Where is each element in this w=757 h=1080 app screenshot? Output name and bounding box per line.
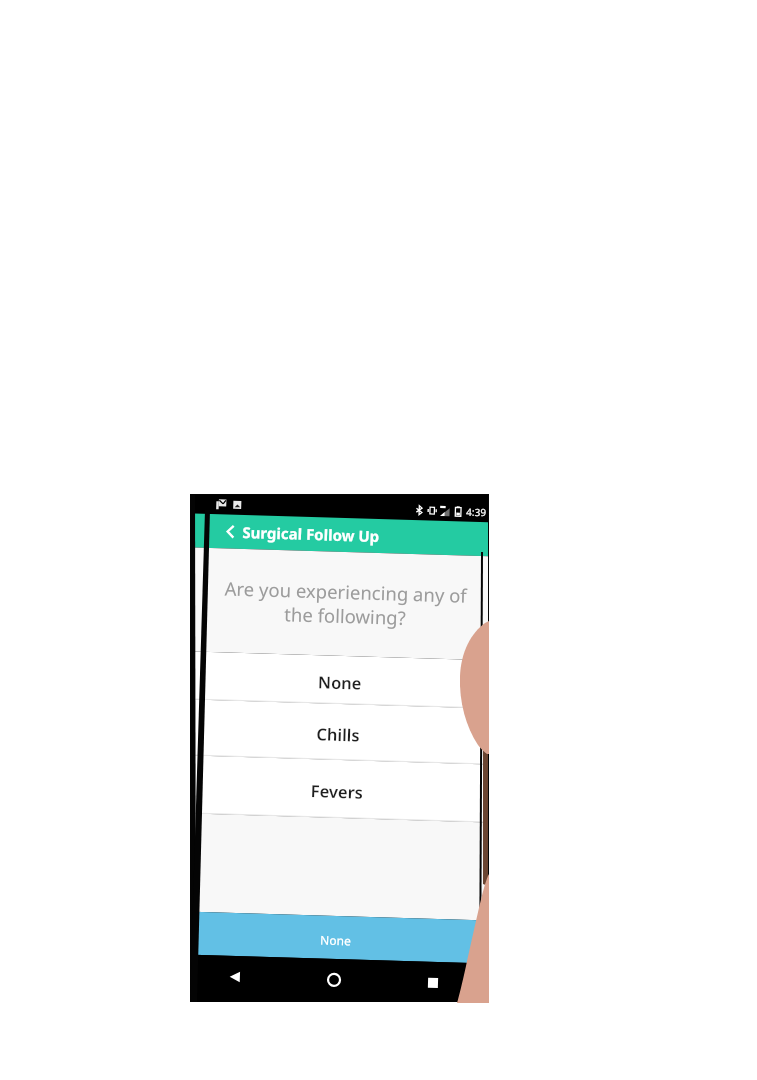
button[interactable]: None (194, 651, 488, 709)
button[interactable]: Back (220, 521, 241, 542)
button[interactable]: Recents (420, 969, 446, 996)
staticText: Are you experiencing any of the followin… (194, 574, 488, 633)
staticText: Chills (316, 722, 361, 746)
staticText: None (320, 931, 351, 948)
staticText: Surgical Follow Up (242, 522, 380, 546)
staticText: Fevers (310, 779, 364, 803)
button[interactable]: Home (321, 966, 347, 993)
button[interactable]: Fevers (194, 755, 488, 823)
button[interactable]: Chills (194, 699, 488, 765)
staticText: 4:39 (466, 505, 486, 519)
button[interactable]: Back (222, 963, 248, 990)
button[interactable]: None (194, 911, 488, 964)
staticText: None (318, 670, 362, 694)
